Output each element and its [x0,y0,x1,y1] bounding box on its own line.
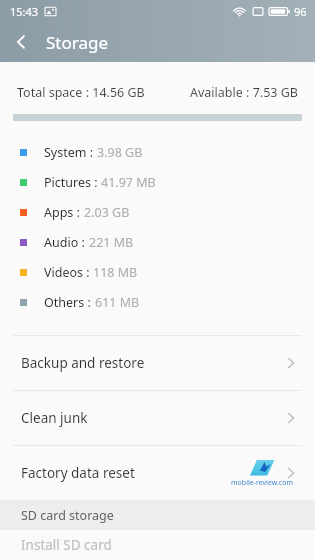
staticText: 41.97 MB [101,174,156,191]
staticText: Factory data reset [21,464,135,482]
staticText: 611 MB [95,294,140,311]
staticText: 96 [294,4,307,19]
staticText: Audio : [44,234,89,251]
staticText: Videos : [44,264,93,281]
button[interactable]: Install SD card [0,530,315,560]
other: Open [283,355,299,371]
button[interactable]: Clean junk [0,391,315,445]
staticText: System : [44,144,97,161]
button[interactable]: Back [0,22,42,62]
button[interactable]: Backup and restore [0,336,315,390]
staticText: 221 MB [89,234,134,251]
staticText: Clean junk [21,409,88,427]
staticText: SD card storage [21,507,114,524]
staticText: Apps : [44,204,84,221]
staticText: Others : [44,294,95,311]
staticText: Pictures : [44,174,101,191]
staticText: Install SD card [21,536,112,554]
staticText: 118 MB [93,264,138,281]
staticText: Available : 7.53 GB [190,84,298,101]
staticText: mobile-review.com [231,478,293,488]
staticText: Storage [46,31,109,54]
button[interactable]: Factory data reset [0,446,315,500]
staticText: Total space : 14.56 GB [17,84,145,101]
staticText: 3.98 GB [97,144,143,161]
staticText: 2.03 GB [84,204,130,221]
staticText: Backup and restore [21,354,145,372]
other: Open [283,465,299,481]
staticText: 15:43 [10,4,39,19]
other: Open [283,410,299,426]
